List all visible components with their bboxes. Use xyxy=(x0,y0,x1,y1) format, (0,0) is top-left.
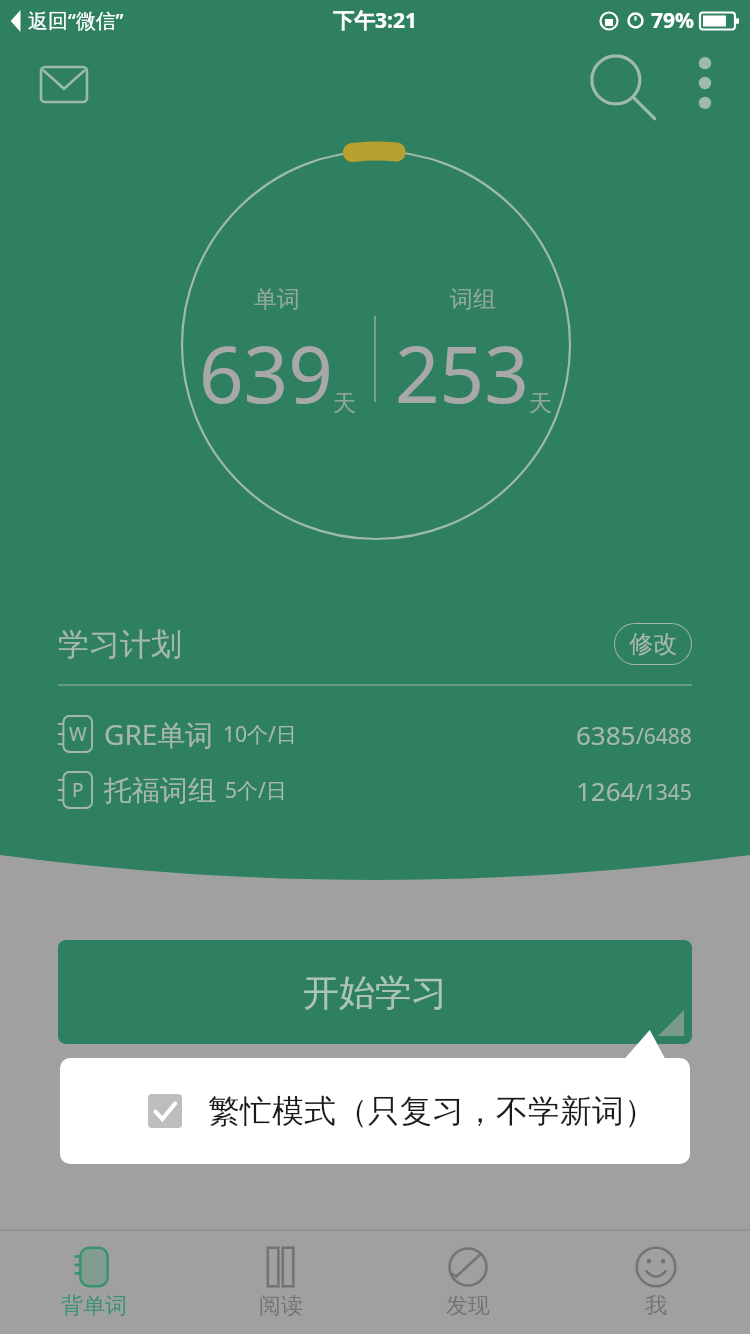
staticText: 开始学习 xyxy=(303,970,447,1015)
staticText: 639 xyxy=(199,320,333,426)
staticText: /6488 xyxy=(636,722,692,751)
staticText: 10个/日 xyxy=(223,720,297,749)
staticText: GRE单词 xyxy=(104,715,214,753)
button[interactable]: 繁忙模式（只复习，不学新词） xyxy=(60,1058,690,1164)
staticText: 托福词组 xyxy=(104,773,216,808)
staticText: 背单词 xyxy=(61,1292,127,1320)
button[interactable]: 修改 xyxy=(614,623,692,665)
staticText: 6385 xyxy=(576,717,636,752)
button[interactable]: More options xyxy=(681,52,729,114)
button[interactable]: 开始学习 xyxy=(58,940,692,1044)
staticText: /1345 xyxy=(636,778,692,807)
button[interactable]: P xyxy=(58,765,692,815)
staticText: 阅读 xyxy=(259,1292,303,1320)
button[interactable]: 我 xyxy=(562,1232,750,1334)
button[interactable]: Search xyxy=(582,46,654,118)
staticText: 修改 xyxy=(629,629,677,659)
staticText: 天 xyxy=(333,389,356,418)
button[interactable]: 阅读 xyxy=(187,1232,374,1334)
staticText: 下午3:21 xyxy=(333,6,417,35)
staticText: W xyxy=(69,721,87,747)
staticText: 词组 xyxy=(450,285,496,314)
staticText: 我 xyxy=(645,1292,667,1320)
staticText: 学习计划 xyxy=(58,625,182,664)
staticText: 天 xyxy=(529,389,552,418)
staticText: 5个/日 xyxy=(225,776,287,805)
button[interactable]: 发现 xyxy=(374,1232,562,1334)
staticText: 253 xyxy=(395,320,529,426)
staticText: 发现 xyxy=(446,1292,490,1320)
staticText: P xyxy=(72,777,84,803)
staticText: 繁忙模式（只复习，不学新词） xyxy=(208,1091,656,1131)
staticText: 返回“微信” xyxy=(28,7,124,34)
staticText: 79% xyxy=(651,6,694,35)
button[interactable]: 背单词 xyxy=(0,1232,187,1334)
button[interactable]: Messages xyxy=(28,58,100,110)
staticText: 1264 xyxy=(576,773,636,808)
button[interactable]: W xyxy=(58,709,692,759)
staticText: 单词 xyxy=(254,285,300,314)
